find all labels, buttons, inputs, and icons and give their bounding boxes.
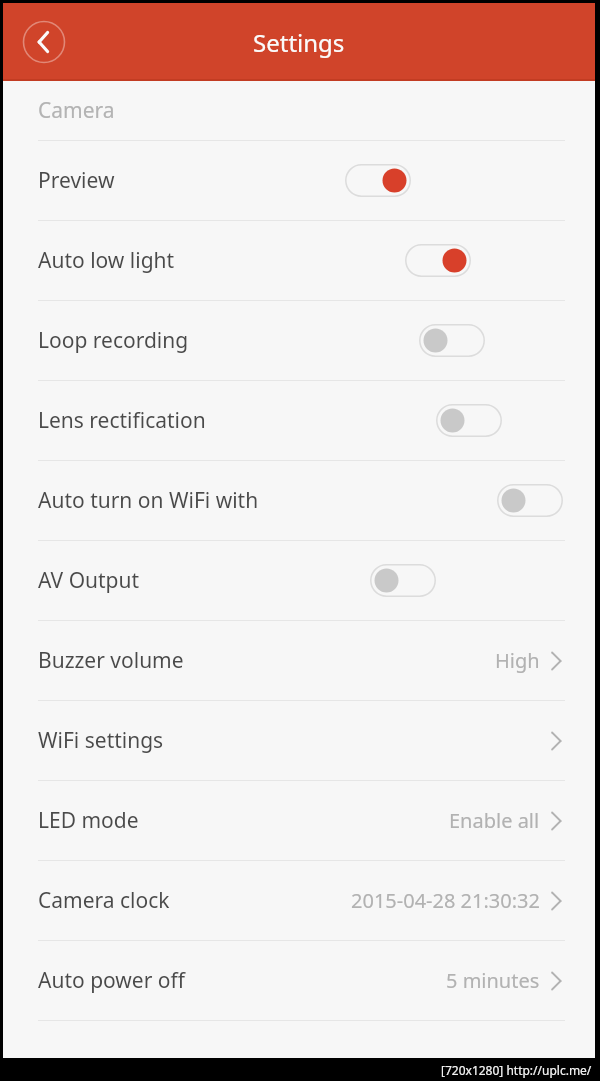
button[interactable]: LED mode xyxy=(3,781,595,860)
staticText: [720x1280] http://uplc.me/ xyxy=(441,1062,592,1078)
staticText: Lens rectification xyxy=(38,406,206,435)
staticText: Buzzer volume xyxy=(38,646,184,675)
button[interactable]: Buzzer volume xyxy=(3,621,595,700)
staticText: Preview xyxy=(38,166,115,195)
button[interactable]: Camera clock xyxy=(3,861,595,940)
button[interactable]: Preview xyxy=(3,141,595,220)
button[interactable]: Auto low light xyxy=(3,221,595,300)
staticText: Camera xyxy=(38,96,115,125)
staticText: 2015-04-28 21:30:32 xyxy=(351,887,540,914)
button[interactable]: Loop recording xyxy=(3,301,595,380)
staticText: Settings xyxy=(253,26,345,59)
staticText: AV Output xyxy=(38,566,140,595)
staticText: Camera clock xyxy=(38,886,170,915)
staticText: High xyxy=(495,647,540,674)
staticText: WiFi settings xyxy=(38,726,164,755)
button[interactable]: Back xyxy=(22,20,66,64)
button[interactable]: Lens rectification xyxy=(3,381,595,460)
staticText: 5 minutes xyxy=(446,967,540,994)
button[interactable]: Auto turn on WiFi with device xyxy=(3,461,595,540)
button[interactable]: WiFi settings xyxy=(3,701,595,780)
staticText: Auto turn on WiFi with device xyxy=(38,486,267,515)
staticText: Enable all xyxy=(449,807,540,834)
staticText: Loop recording xyxy=(38,326,189,355)
staticText: LED mode xyxy=(38,806,139,835)
staticText: Auto low light xyxy=(38,246,175,275)
button[interactable]: AV Output xyxy=(3,541,595,620)
staticText: Auto power off xyxy=(38,966,185,995)
button[interactable]: Auto power off xyxy=(3,941,595,1020)
